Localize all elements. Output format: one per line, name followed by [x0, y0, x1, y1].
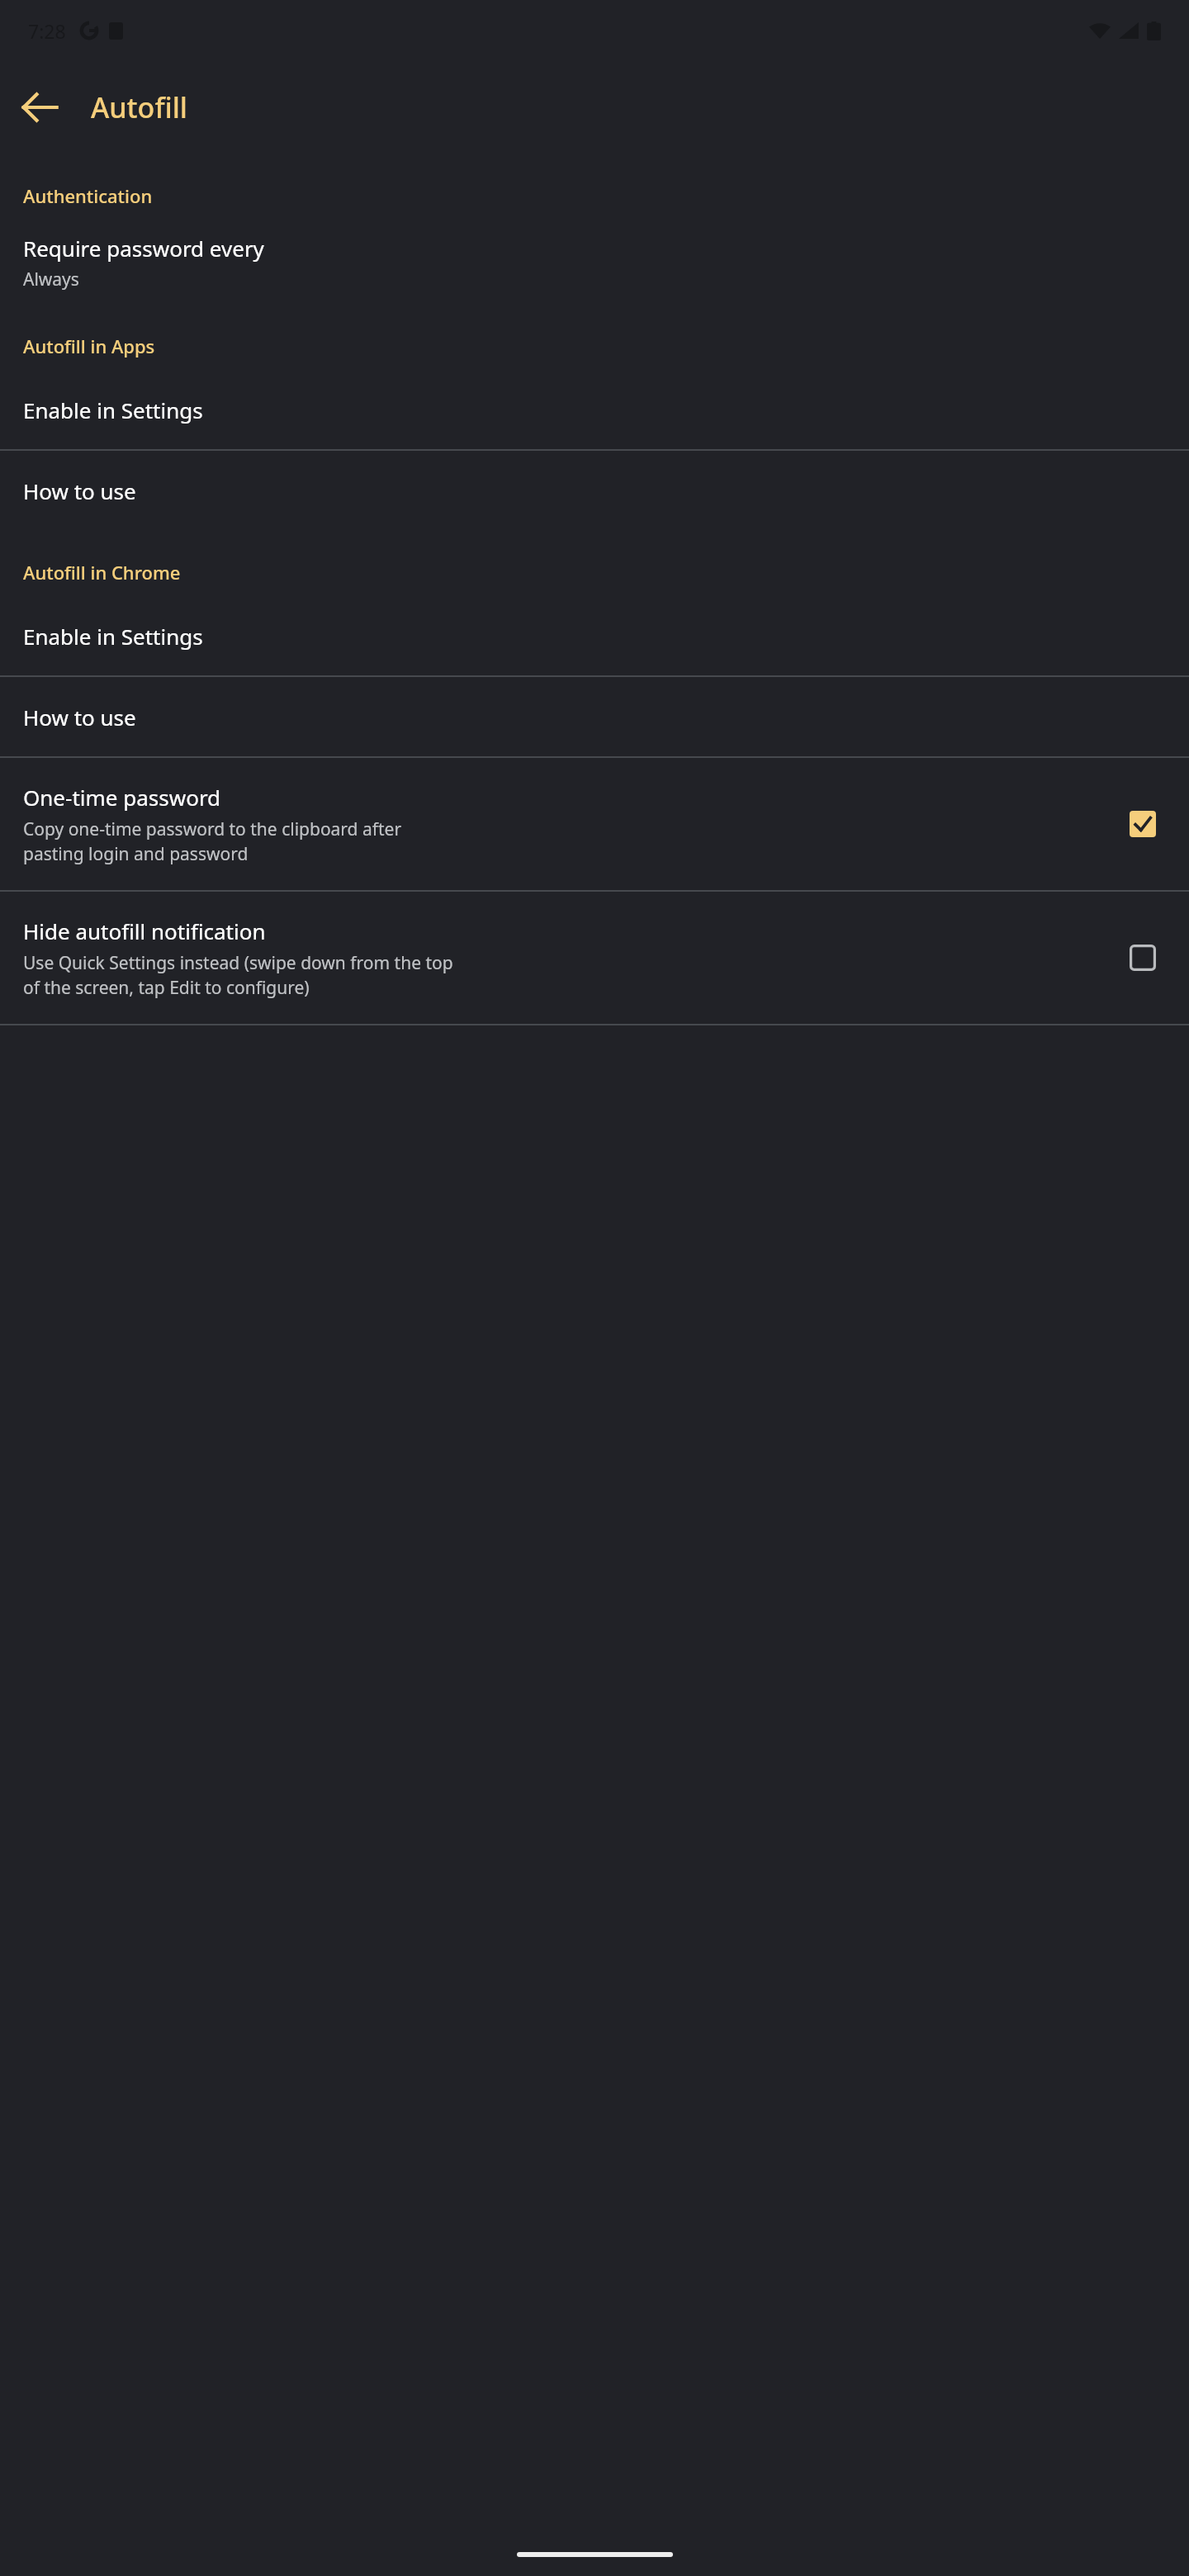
other: Hide autofill notification	[1116, 931, 1169, 984]
staticText: 7:28	[28, 18, 66, 44]
staticText: Require password every	[23, 234, 264, 263]
button[interactable]: How to use	[0, 677, 1189, 756]
other: One-time password	[1116, 798, 1169, 850]
staticText: Autofill in Apps	[23, 334, 155, 358]
button[interactable]: One-time password	[0, 758, 1189, 890]
button[interactable]: How to use	[0, 451, 1189, 530]
staticText: Hide autofill notification	[23, 916, 266, 945]
button[interactable]: Enable in Settings	[0, 370, 1189, 449]
staticText: One-time password	[23, 783, 221, 812]
staticText: Autofill in Chrome	[23, 560, 181, 585]
button[interactable]: Hide autofill notification	[0, 892, 1189, 1024]
staticText: Copy one-time password to the clipboard …	[23, 817, 402, 865]
button[interactable]: Back	[7, 74, 73, 140]
button[interactable]: Require password every	[0, 223, 1189, 302]
staticText: Enable in Settings	[23, 395, 203, 424]
staticText: Enable in Settings	[23, 622, 203, 651]
staticText: How to use	[23, 703, 136, 732]
button[interactable]: Enable in Settings	[0, 596, 1189, 675]
staticText: Authentication	[23, 183, 153, 208]
staticText: Autofill	[91, 88, 188, 126]
staticText: Always	[23, 268, 79, 291]
staticText: How to use	[23, 476, 136, 505]
staticText: Use Quick Settings instead (swipe down f…	[23, 951, 453, 999]
